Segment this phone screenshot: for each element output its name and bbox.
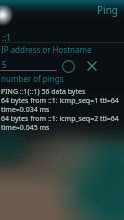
staticText: time=0.034 ms: [1, 105, 50, 115]
staticText: ::1: [2, 32, 11, 43]
staticText: 5: [2, 59, 7, 70]
staticText: PING ::1(::1) 56 data bytes: [1, 87, 86, 97]
staticText: Ping: [97, 3, 118, 17]
staticText: number of pings: [1, 73, 64, 84]
button[interactable]: Ping: [0, 0, 124, 22]
staticText: IP address or Hostname: [1, 44, 92, 55]
staticText: 64 bytes from ::1: icmp_seq=2 ttl=64: [1, 114, 119, 124]
staticText: time=0.045 ms: [1, 123, 50, 133]
button[interactable]: Cancel: [84, 58, 100, 74]
button[interactable]: Start ping: [60, 58, 76, 74]
staticText: 64 bytes from ::1: icmp_seq=1 ttl=64: [1, 96, 119, 106]
